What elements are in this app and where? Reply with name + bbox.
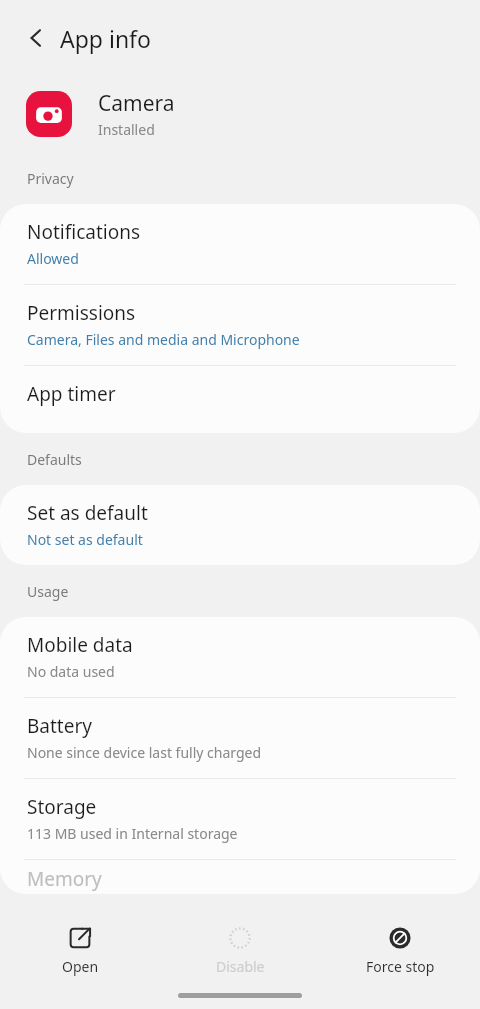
staticText: Camera	[98, 89, 175, 118]
staticText: Mobile data	[27, 632, 133, 658]
staticText: 113 MB used in Internal storage	[27, 824, 238, 843]
staticText: App timer	[27, 381, 116, 407]
button[interactable]: Disable	[160, 918, 320, 984]
staticText: App info	[60, 23, 151, 54]
staticText: Privacy	[27, 169, 74, 188]
staticText: Notifications	[27, 219, 141, 245]
button[interactable]: Battery	[0, 698, 480, 778]
staticText: Usage	[27, 582, 69, 601]
button[interactable]: Notifications	[0, 204, 480, 284]
button[interactable]: Storage	[0, 779, 480, 859]
staticText: Defaults	[27, 450, 82, 469]
staticText: Set as default	[27, 500, 148, 526]
staticText: Battery	[27, 713, 92, 739]
button[interactable]: Camera	[0, 76, 480, 152]
button[interactable]: Permissions	[0, 285, 480, 365]
staticText: None since device last fully charged	[27, 743, 262, 762]
button[interactable]: Back	[14, 16, 58, 60]
button[interactable]: Set as default	[0, 485, 480, 565]
button[interactable]: Open	[0, 918, 160, 984]
button[interactable]: Memory	[0, 860, 480, 894]
button[interactable]: Force stop	[320, 918, 480, 984]
staticText: Permissions	[27, 300, 136, 326]
staticText: Installed	[98, 120, 155, 139]
staticText: Memory	[27, 866, 102, 892]
button[interactable]: App timer	[0, 366, 480, 433]
staticText: Force stop	[366, 957, 435, 976]
staticText: No data used	[27, 662, 115, 681]
button[interactable]: Mobile data	[0, 617, 480, 697]
staticText: Camera, Files and media and Microphone	[27, 330, 300, 349]
staticText: Allowed	[27, 249, 79, 268]
staticText: Open	[62, 957, 99, 976]
staticText: Storage	[27, 794, 97, 820]
staticText: Not set as default	[27, 530, 143, 549]
staticText: Disable	[216, 957, 265, 976]
